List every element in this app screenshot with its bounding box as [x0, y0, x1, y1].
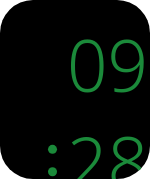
staticText: 28 [66, 113, 148, 179]
staticText: 09 [66, 16, 148, 113]
button[interactable]: Watch face showing 09:28 [0, 0, 150, 179]
